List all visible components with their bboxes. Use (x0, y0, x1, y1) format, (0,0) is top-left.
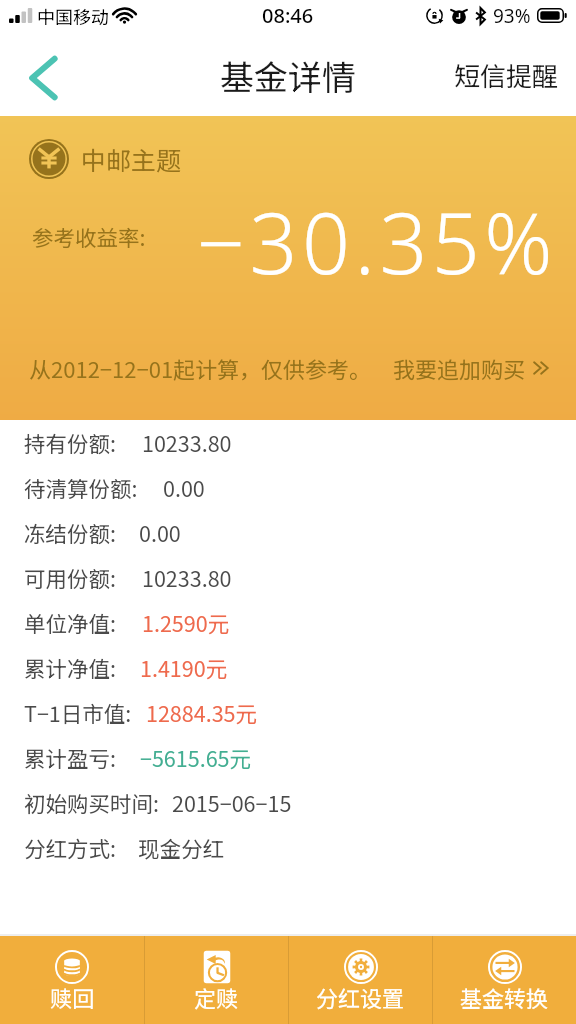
staticText: 0.00 (139, 517, 181, 548)
button[interactable]: 返回 (0, 44, 90, 116)
button[interactable]: 基金转换 (433, 936, 576, 1024)
staticText: 08:46 (262, 2, 314, 29)
staticText: 赎回 (50, 981, 95, 1013)
staticText: 中国移动 (37, 3, 109, 29)
staticText: 可用份额: (24, 562, 116, 593)
staticText: 12884.35元 (146, 697, 258, 728)
staticText: 累计盈亏: (24, 742, 116, 773)
staticText: 10233.80 (142, 562, 232, 593)
staticText: 2015−06−15 (172, 787, 292, 818)
staticText: 单位净值: (24, 607, 116, 638)
button[interactable]: 分红设置 (289, 936, 432, 1024)
staticText: 持有份额: (24, 427, 116, 458)
staticText: 冻结份额: (24, 517, 116, 548)
staticText: 短信提醒 (454, 56, 559, 94)
staticText: 93% (493, 3, 531, 29)
staticText: 现金分红 (138, 832, 225, 863)
staticText: 1.4190元 (140, 652, 228, 683)
staticText: 中邮主题 (81, 141, 182, 177)
button[interactable]: 短信提醒 (442, 44, 576, 116)
staticText: −30.35% (197, 184, 558, 298)
staticText: T−1日市值: (24, 697, 132, 728)
staticText: 从2012−12−01起计算，仅供参考。 (29, 352, 372, 384)
staticText: 我要追加购买 (393, 352, 526, 384)
staticText: 累计净值: (24, 652, 116, 683)
staticText: 基金详情 (220, 51, 356, 100)
staticText: 定赎 (194, 981, 239, 1013)
staticText: 10233.80 (142, 427, 232, 458)
staticText: −5615.65元 (140, 742, 252, 773)
staticText: 1.2590元 (142, 607, 230, 638)
staticText: 基金转换 (460, 981, 549, 1013)
button[interactable]: 赎回 (0, 936, 144, 1024)
staticText: 分红设置 (316, 981, 405, 1013)
staticText: 初始购买时间: (24, 787, 159, 818)
staticText: 参考收益率: (32, 221, 146, 252)
button[interactable]: 我要追加购买 (393, 352, 553, 384)
staticText: 待清算份额: (24, 472, 138, 503)
staticText: 0.00 (163, 472, 205, 503)
button[interactable]: 定赎 (145, 936, 288, 1024)
staticText: 分红方式: (24, 832, 116, 863)
